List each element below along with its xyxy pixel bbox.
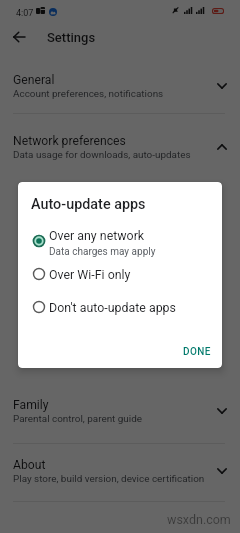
staticText: Play store, build version, device certif…: [13, 473, 205, 485]
button[interactable]: About: [0, 445, 240, 497]
button[interactable]: Don't auto-update apps: [18, 296, 222, 328]
button[interactable]: Over any network: [18, 223, 222, 263]
button[interactable]: DONE: [176, 341, 218, 363]
staticText: About: [13, 458, 46, 472]
staticText: wsxdn.com: [167, 512, 231, 527]
staticText: DONE: [183, 346, 211, 358]
staticText: General: [13, 73, 55, 87]
button[interactable]: General: [0, 60, 240, 112]
staticText: Auto-update apps: [31, 196, 146, 213]
staticText: Account preferences, notifications: [13, 88, 164, 100]
button[interactable]: Family: [0, 385, 240, 437]
staticText: 4:07: [16, 8, 34, 19]
staticText: Don't auto-update apps: [49, 300, 176, 315]
staticText: Family: [13, 398, 49, 412]
staticText: Parental control, parent guide: [13, 413, 143, 425]
button[interactable]: Network preferences: [0, 121, 240, 173]
staticText: Settings: [47, 30, 96, 45]
staticText: Over any network: [49, 228, 145, 243]
staticText: Over Wi-Fi only: [49, 267, 131, 282]
button[interactable]: Over Wi-Fi only: [18, 263, 222, 295]
staticText: Data usage for downloads, auto-updates: [13, 149, 191, 161]
button[interactable]: Back: [7, 25, 31, 49]
staticText: Network preferences: [13, 134, 126, 148]
staticText: Data charges may apply: [49, 246, 156, 258]
